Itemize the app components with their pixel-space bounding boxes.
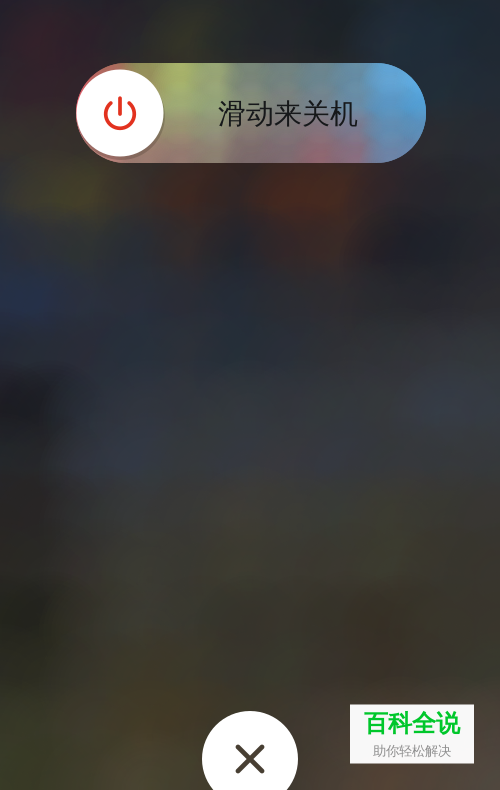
staticText: 助你轻松解决 xyxy=(373,743,451,759)
button[interactable]: 滑动来关机 xyxy=(76,63,426,163)
staticText: 百科全说 xyxy=(364,708,460,739)
button[interactable]: Cancel xyxy=(202,711,298,790)
staticText: 滑动来关机 xyxy=(218,96,358,132)
